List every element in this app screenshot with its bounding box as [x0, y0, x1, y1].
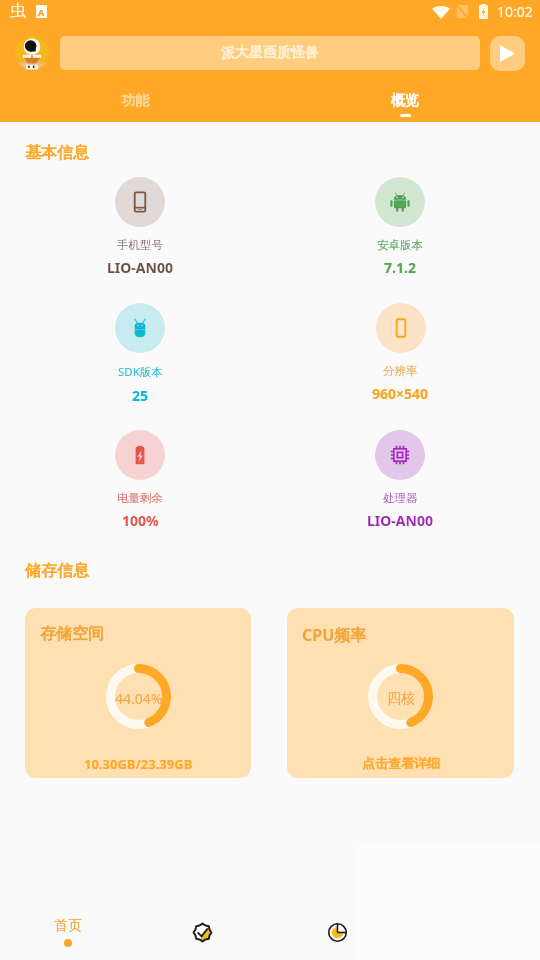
staticText: A: [38, 6, 45, 18]
staticText: 手机型号: [117, 238, 163, 252]
staticText: 四核: [387, 690, 415, 708]
button[interactable]: 安卓版本: [375, 177, 425, 277]
staticText: 100%: [122, 511, 159, 530]
staticText: 虫: [10, 1, 26, 21]
staticText: 首页: [54, 917, 82, 935]
staticText: CPU频率: [302, 624, 367, 646]
button[interactable]: 派大星画质怪兽: [60, 36, 480, 70]
button[interactable]: CPU频率: [287, 608, 514, 778]
button[interactable]: 处理器: [367, 430, 433, 530]
button[interactable]: Statistics: [270, 896, 405, 960]
staticText: 25: [132, 386, 149, 405]
staticText: 960×540: [372, 384, 429, 403]
button[interactable]: 概览: [270, 75, 540, 122]
button[interactable]: 手机型号: [107, 177, 173, 277]
button[interactable]: SDK版本: [115, 303, 165, 405]
button[interactable]: 功能: [0, 75, 270, 122]
staticText: LIO-AN00: [367, 511, 433, 530]
staticText: 存储空间: [40, 624, 104, 644]
staticText: 电量剩余: [117, 491, 163, 505]
staticText: 派大星画质怪兽: [221, 44, 319, 62]
button[interactable]: 电量剩余: [115, 430, 165, 530]
button[interactable]: 首页: [0, 896, 135, 960]
staticText: 点击查看详细: [362, 755, 440, 771]
button[interactable]: 分辨率: [372, 303, 429, 403]
staticText: 基本信息: [25, 143, 89, 163]
staticText: 7.1.2: [384, 258, 416, 277]
staticText: 处理器: [383, 491, 418, 505]
staticText: 储存信息: [25, 561, 89, 581]
staticText: LIO-AN00: [107, 258, 173, 277]
button[interactable]: Play: [490, 36, 525, 71]
staticText: 分辨率: [383, 364, 418, 378]
staticText: SDK版本: [118, 364, 163, 380]
staticText: 44.04%: [115, 689, 163, 708]
staticText: 概览: [391, 92, 419, 110]
staticText: 10:02: [497, 2, 533, 21]
staticText: 功能: [121, 92, 149, 110]
staticText: 10.30GB/23.39GB: [84, 755, 193, 773]
button[interactable]: 存储空间: [25, 608, 251, 778]
button[interactable]: Verified: [135, 896, 270, 960]
staticText: 安卓版本: [377, 238, 423, 252]
